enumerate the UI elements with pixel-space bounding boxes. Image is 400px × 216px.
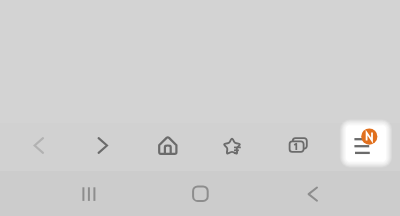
button[interactable]: Forward — [79, 123, 127, 171]
button[interactable]: Recent apps — [65, 171, 113, 216]
button[interactable]: Back — [289, 171, 337, 216]
button[interactable]: Back — [15, 123, 63, 171]
button[interactable]: Menu — [341, 123, 389, 171]
button[interactable]: Home — [144, 123, 192, 171]
button[interactable]: Bookmarks — [208, 123, 256, 171]
button[interactable]: Home — [176, 171, 224, 216]
button[interactable]: Tabs — [272, 123, 320, 171]
